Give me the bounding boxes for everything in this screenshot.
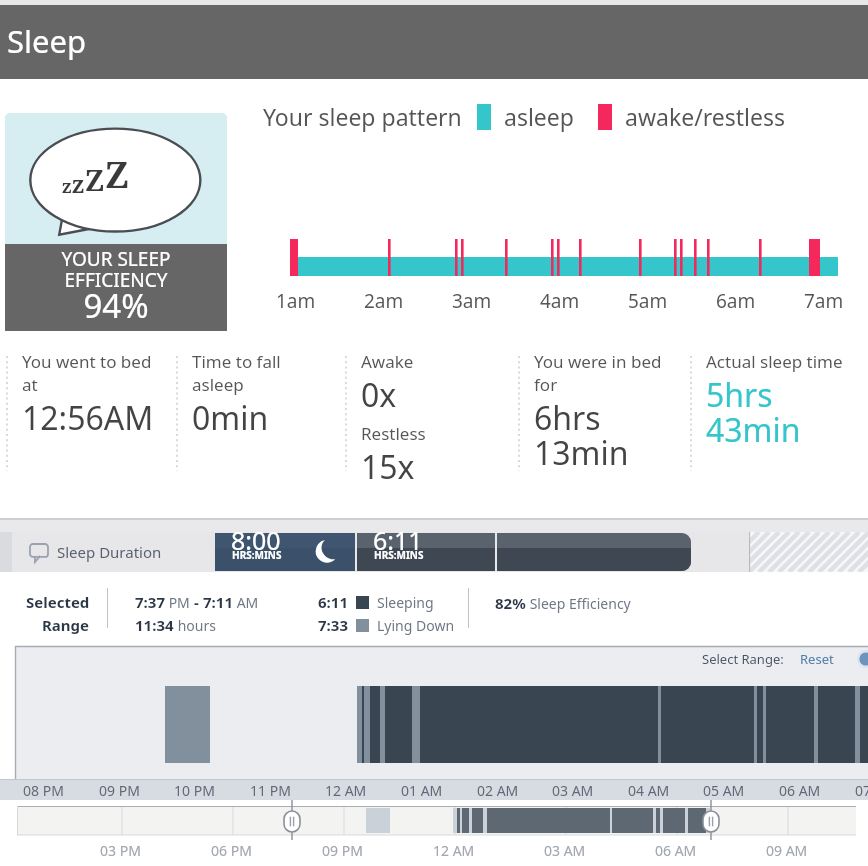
staticText: Sleeping bbox=[377, 593, 434, 612]
staticText: 1am bbox=[276, 288, 316, 314]
staticText: 0x bbox=[361, 373, 397, 417]
staticText: 09 AM bbox=[766, 841, 808, 860]
staticText: 03 AM bbox=[544, 841, 586, 860]
staticText: 6hrs 13min bbox=[534, 396, 629, 475]
staticText: Sleep Efficiency bbox=[526, 594, 631, 613]
staticText: 03 PM bbox=[100, 841, 141, 860]
staticText: 6:11 bbox=[373, 523, 423, 557]
staticText: z bbox=[62, 174, 72, 199]
staticText: Reset bbox=[800, 650, 834, 668]
staticText: Range bbox=[42, 615, 90, 635]
staticText: Lying Down bbox=[377, 616, 455, 635]
staticText: z bbox=[72, 168, 85, 199]
staticText: 5hrs 43min bbox=[706, 373, 801, 452]
button[interactable]: Range handle bbox=[284, 811, 300, 832]
staticText: asleep bbox=[504, 101, 574, 132]
staticText: 08 PM bbox=[23, 781, 64, 800]
button[interactable]: 8:00 bbox=[215, 533, 355, 571]
staticText: 6am bbox=[716, 288, 756, 314]
staticText: 94% bbox=[5, 283, 227, 328]
staticText: 82% bbox=[495, 593, 526, 613]
button[interactable]: You were in bed for bbox=[518, 349, 690, 499]
staticText: 04 AM bbox=[628, 781, 670, 800]
staticText: hours bbox=[174, 616, 216, 635]
staticText: - bbox=[194, 592, 199, 612]
staticText: You went to bed at bbox=[22, 350, 152, 396]
staticText: 12 AM bbox=[325, 781, 367, 800]
button[interactable]: Awake bbox=[345, 349, 518, 499]
staticText: 09 PM bbox=[322, 841, 363, 860]
button[interactable]: You went to bed at bbox=[6, 349, 176, 499]
staticText: 12:56AM bbox=[22, 396, 154, 440]
staticText: 03 AM bbox=[552, 781, 594, 800]
staticText: Time to fall asleep bbox=[192, 350, 281, 396]
button[interactable]: Actual sleep time bbox=[690, 349, 868, 499]
staticText: 15x bbox=[361, 445, 415, 489]
staticText: 8:00 bbox=[231, 523, 281, 557]
staticText: Select Range: bbox=[702, 650, 784, 668]
staticText: You were in bed for bbox=[534, 350, 662, 396]
button[interactable]: Reset bbox=[800, 650, 834, 668]
button[interactable]: z bbox=[5, 113, 227, 331]
button[interactable] bbox=[497, 533, 691, 571]
staticText: 01 AM bbox=[401, 781, 443, 800]
staticText: YOUR SLEEP EFFICIENCY bbox=[5, 246, 227, 292]
staticText: Awake bbox=[361, 350, 414, 373]
staticText: 7:11 bbox=[203, 592, 233, 612]
other: Sleep duration info bbox=[29, 543, 49, 562]
staticText: Sleep bbox=[7, 20, 87, 62]
staticText: 02 AM bbox=[477, 781, 519, 800]
staticText: Selected bbox=[26, 592, 90, 612]
staticText: 7:37 bbox=[135, 592, 165, 612]
button[interactable]: Time to fall asleep bbox=[176, 349, 345, 499]
staticText: 7am bbox=[804, 288, 844, 314]
button[interactable]: Sleep bbox=[0, 5, 868, 79]
button[interactable]: 6:11 bbox=[357, 533, 495, 571]
staticText: 10 PM bbox=[174, 781, 215, 800]
staticText: Your sleep pattern bbox=[263, 101, 462, 132]
staticText: 3am bbox=[452, 288, 492, 314]
staticText: 7:33 bbox=[318, 615, 348, 635]
staticText: HRS:MINS bbox=[374, 548, 424, 562]
staticText: HRS:MINS bbox=[232, 548, 282, 562]
staticText: 5am bbox=[628, 288, 668, 314]
staticText: 06 AM bbox=[655, 841, 697, 860]
staticText: Sleep Duration bbox=[57, 542, 162, 562]
staticText: 0min bbox=[192, 396, 269, 440]
staticText: 12 AM bbox=[433, 841, 475, 860]
staticText: 06 PM bbox=[211, 841, 252, 860]
staticText: 4am bbox=[540, 288, 580, 314]
staticText: Z bbox=[85, 160, 105, 199]
staticText: awake/restless bbox=[625, 101, 785, 132]
staticText: AM bbox=[233, 593, 259, 612]
staticText: 11 PM bbox=[250, 781, 291, 800]
other: Help bbox=[857, 650, 868, 668]
staticText: 09 PM bbox=[99, 781, 140, 800]
staticText: 6:11 bbox=[318, 592, 348, 612]
button[interactable]: Range handle bbox=[703, 811, 719, 832]
staticText: Z bbox=[105, 150, 130, 199]
staticText: Actual sleep time bbox=[706, 350, 843, 373]
staticText: 06 AM bbox=[779, 781, 821, 800]
staticText: 07 bbox=[855, 781, 868, 800]
staticText: Restless bbox=[361, 422, 426, 445]
staticText: PM bbox=[165, 593, 194, 612]
staticText: 2am bbox=[364, 288, 404, 314]
staticText: 05 AM bbox=[703, 781, 745, 800]
staticText: 11:34 bbox=[135, 615, 174, 635]
